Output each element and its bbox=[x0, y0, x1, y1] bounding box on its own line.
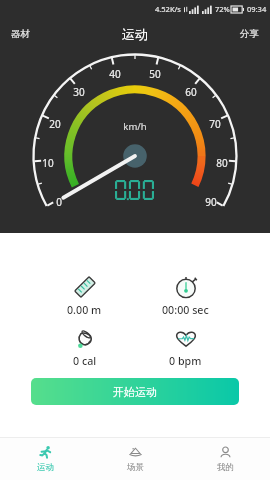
staticText: 运动 bbox=[37, 462, 54, 473]
button[interactable]: 00:00 sec bbox=[135, 276, 236, 318]
staticText: 90 bbox=[205, 195, 217, 209]
staticText: 0.00 m bbox=[67, 303, 102, 318]
staticText: 0 cal bbox=[73, 354, 97, 369]
staticText: 09:34 bbox=[247, 4, 267, 14]
staticText: 开始运动 bbox=[113, 385, 157, 399]
staticText: 80 bbox=[216, 156, 228, 170]
staticText: 4.52K/s bbox=[155, 4, 181, 14]
staticText: 我的 bbox=[217, 462, 234, 473]
button[interactable]: 场景 bbox=[90, 443, 180, 476]
staticText: 场景 bbox=[127, 462, 144, 473]
button[interactable]: 运动 bbox=[0, 443, 90, 476]
button[interactable]: 开始运动 bbox=[31, 378, 239, 405]
staticText: 0 bbox=[56, 195, 62, 209]
staticText: km/h bbox=[123, 120, 147, 133]
staticText: 运动 bbox=[122, 26, 148, 42]
staticText: 30 bbox=[73, 85, 85, 99]
staticText: 分享 bbox=[240, 28, 259, 40]
button[interactable]: 0.00 m bbox=[34, 276, 135, 318]
button[interactable]: 我的 bbox=[180, 443, 270, 476]
staticText: 70 bbox=[209, 117, 221, 131]
staticText: 10 bbox=[42, 156, 54, 170]
staticText: 60 bbox=[185, 85, 197, 99]
button[interactable]: 0 bpm bbox=[135, 327, 236, 369]
staticText: 20 bbox=[49, 117, 61, 131]
staticText: 器材 bbox=[11, 28, 30, 40]
button[interactable]: 器材 bbox=[0, 23, 41, 45]
staticText: 50 bbox=[149, 67, 161, 81]
button[interactable]: 0 cal bbox=[34, 327, 135, 369]
button[interactable]: 分享 bbox=[229, 23, 270, 45]
staticText: 0 bpm bbox=[169, 354, 202, 369]
staticText: 40 bbox=[109, 67, 121, 81]
staticText: 00:00 sec bbox=[162, 303, 209, 318]
staticText: 72% bbox=[215, 4, 230, 14]
